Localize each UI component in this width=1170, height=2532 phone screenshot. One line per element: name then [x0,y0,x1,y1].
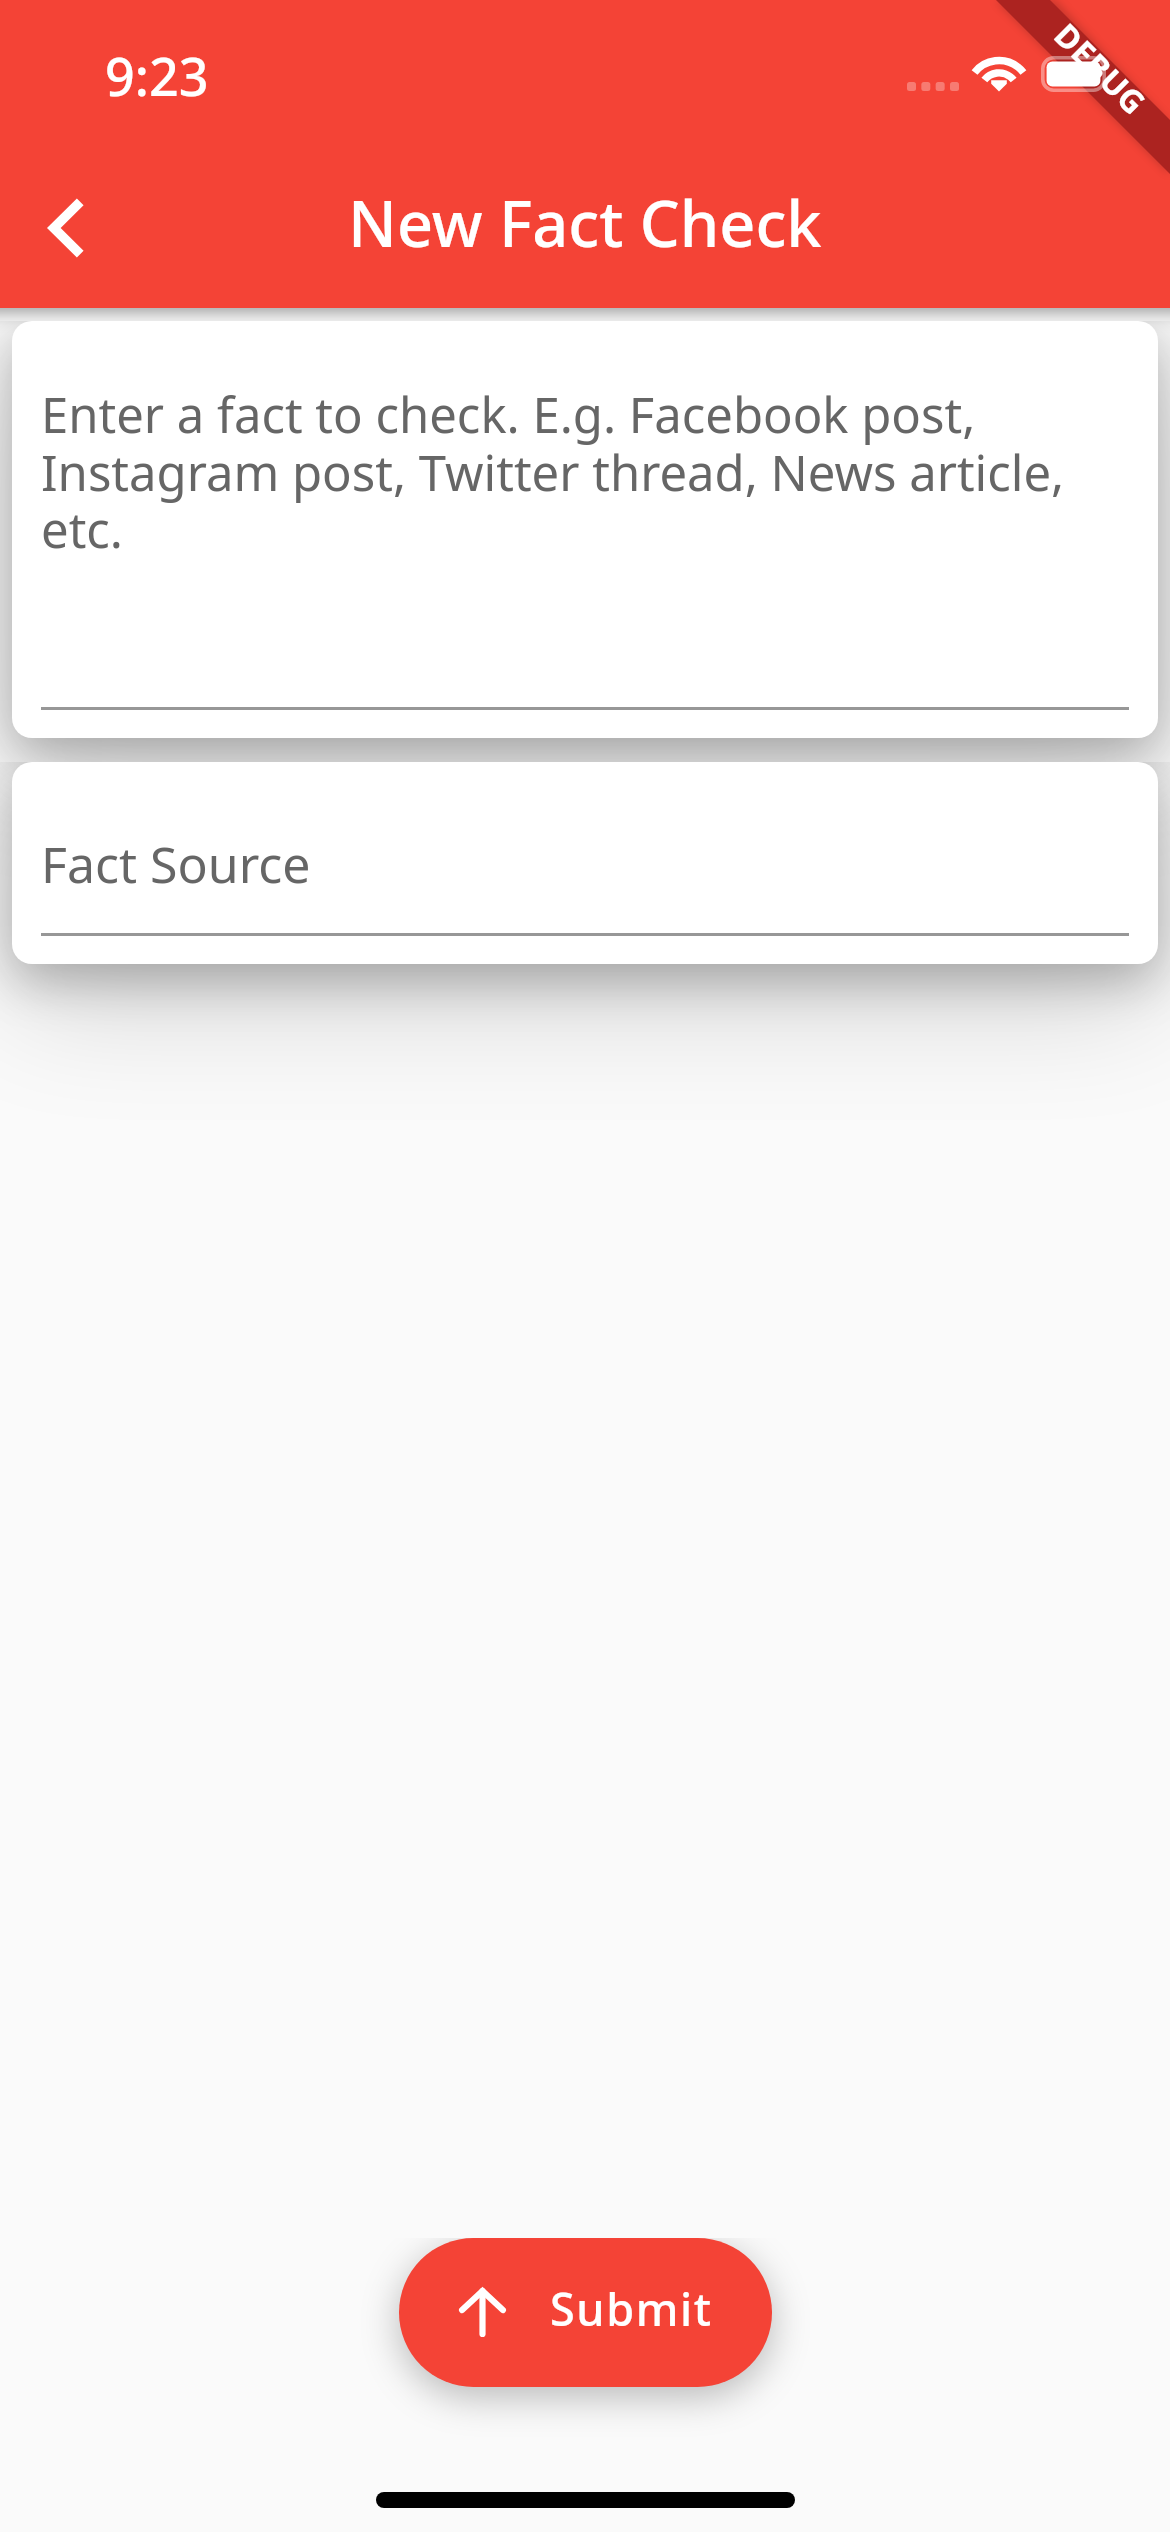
staticText: 9:23 [105,40,209,111]
staticText: New Fact Check [348,180,822,266]
staticText: Enter a fact to check. E.g. Facebook pos… [41,381,1129,562]
staticText: DEBUG [1045,13,1156,124]
staticText: Fact Source [41,830,311,898]
button[interactable]: Submit [399,2238,772,2387]
staticText: Submit [550,2278,713,2339]
button[interactable]: Back [19,180,115,276]
